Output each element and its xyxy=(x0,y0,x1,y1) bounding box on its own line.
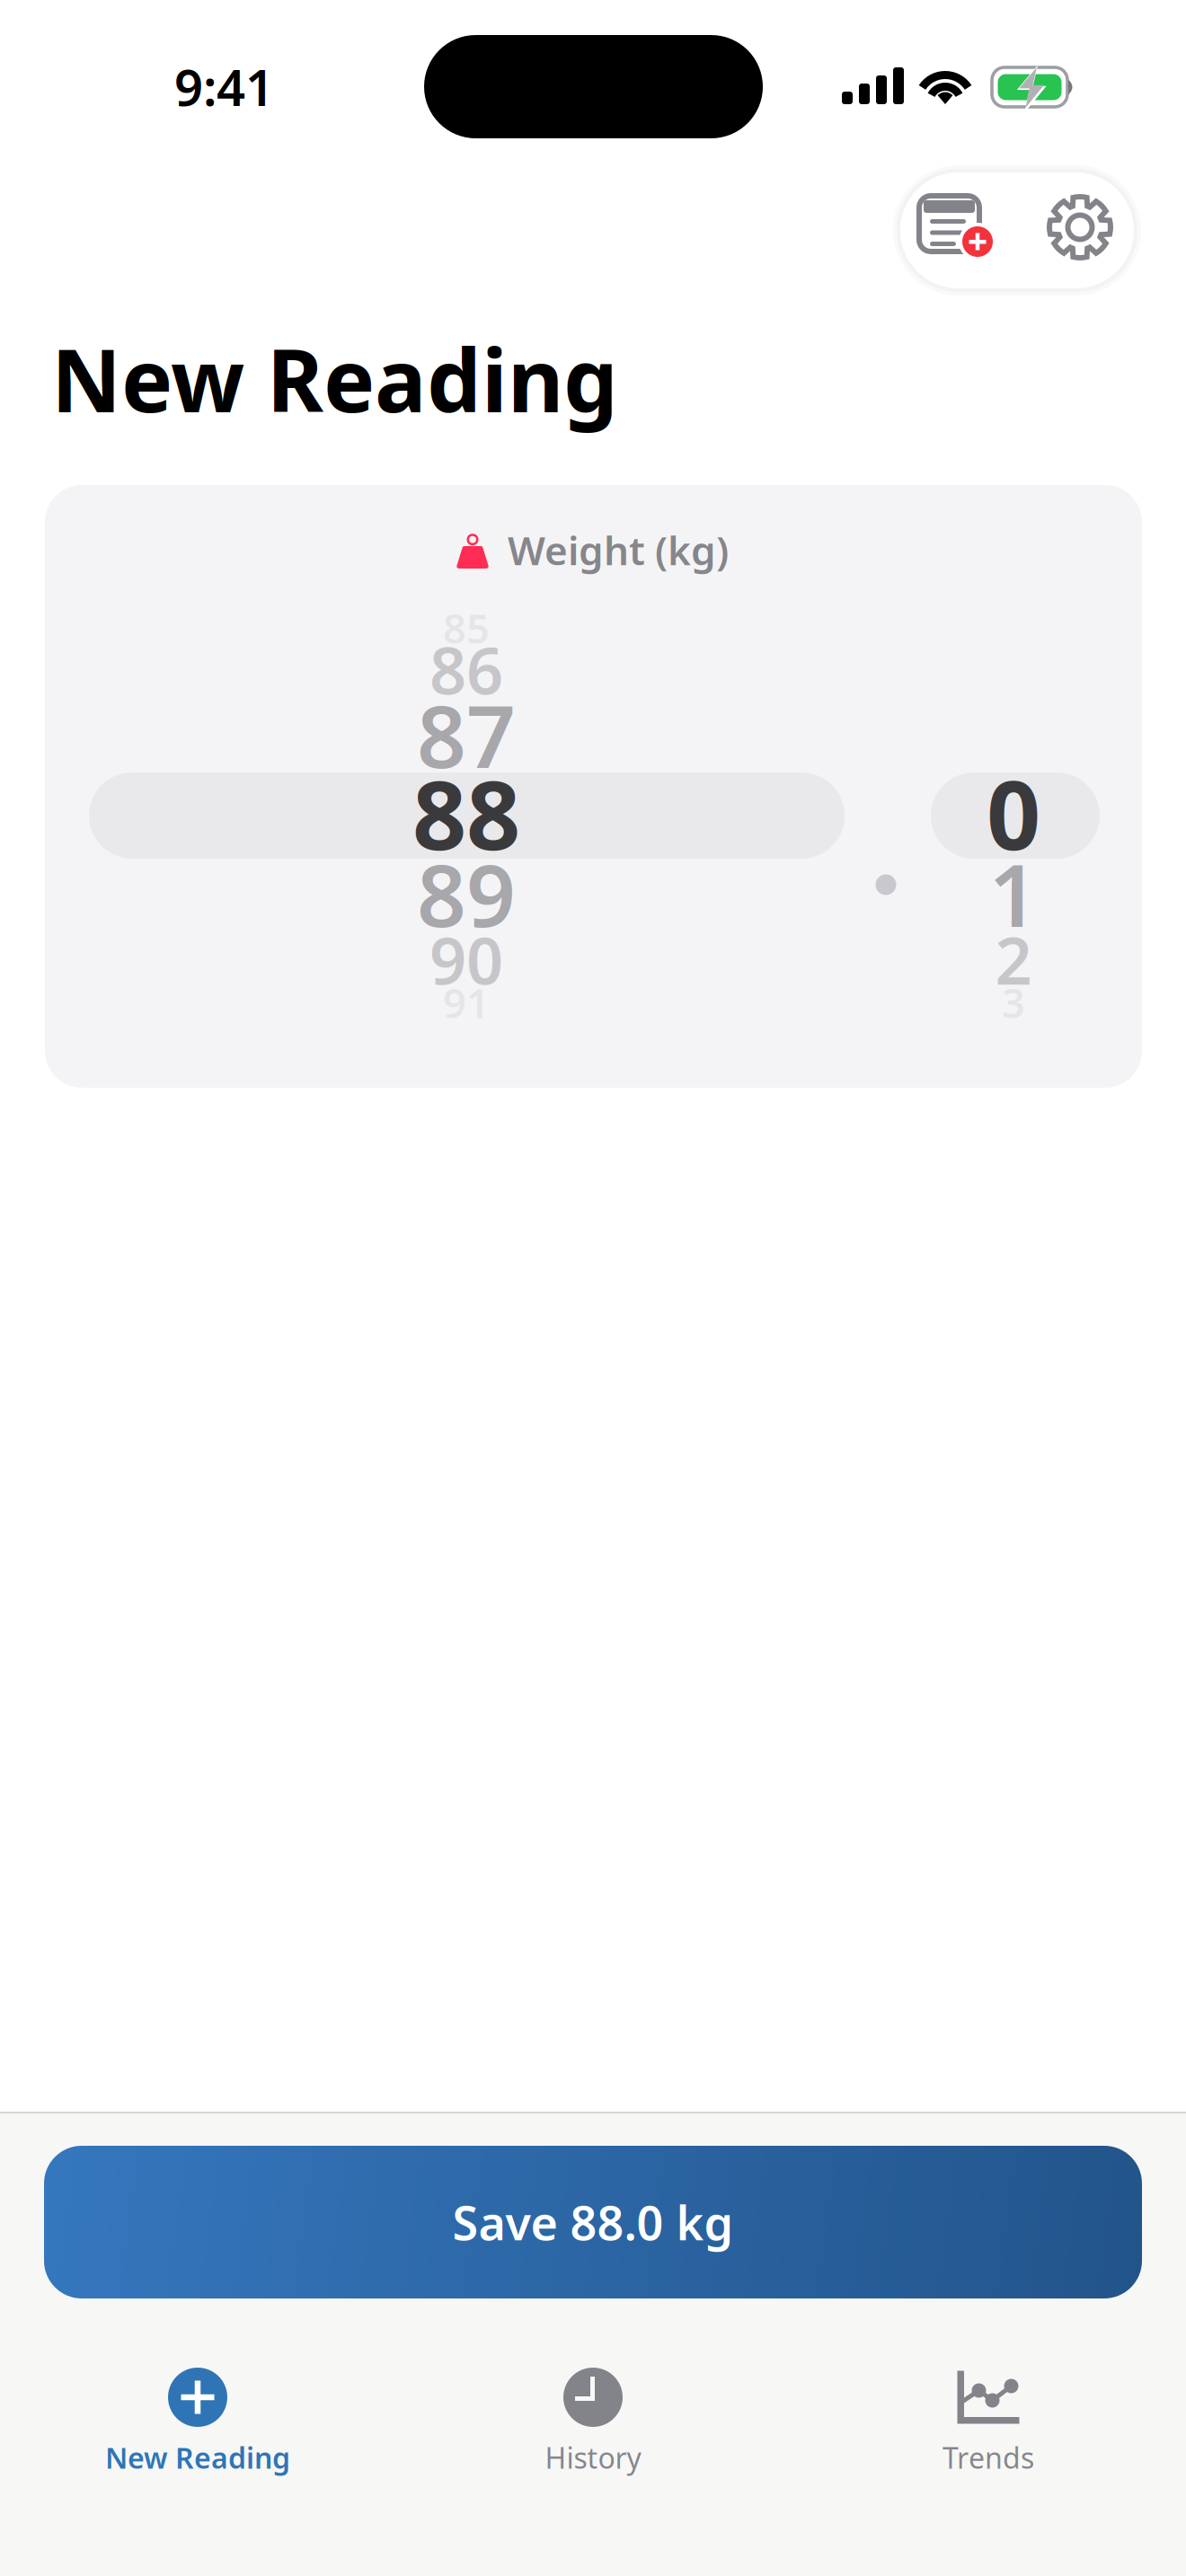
button[interactable]: Save 88.0 kg xyxy=(44,2146,1142,2298)
button[interactable]: New Reading xyxy=(0,2350,395,2493)
staticText: 2 xyxy=(995,917,1032,1002)
staticText: 91 xyxy=(443,975,490,1029)
staticText: Save 88.0 kg xyxy=(452,2191,734,2253)
staticText: Trends xyxy=(943,2438,1034,2477)
staticText: 88 xyxy=(412,750,520,876)
staticText: 85 xyxy=(443,601,490,655)
button[interactable]: Trends xyxy=(791,2350,1186,2493)
staticText: 89 xyxy=(417,836,516,951)
staticText: New Reading xyxy=(51,322,618,436)
staticText: 1 xyxy=(989,836,1038,951)
staticText: 86 xyxy=(429,626,503,712)
staticText: 3 xyxy=(1002,975,1025,1029)
staticText: 9:41 xyxy=(174,53,274,120)
button[interactable]: New note xyxy=(919,196,998,260)
button[interactable]: Settings xyxy=(1048,195,1112,260)
staticText: History xyxy=(545,2438,641,2477)
staticText: 0 xyxy=(987,750,1040,876)
button[interactable]: History xyxy=(395,2350,791,2493)
staticText: Weight (kg) xyxy=(508,524,729,576)
staticText: 90 xyxy=(429,917,503,1002)
staticText: New Reading xyxy=(105,2438,290,2477)
staticText: 87 xyxy=(417,677,516,792)
